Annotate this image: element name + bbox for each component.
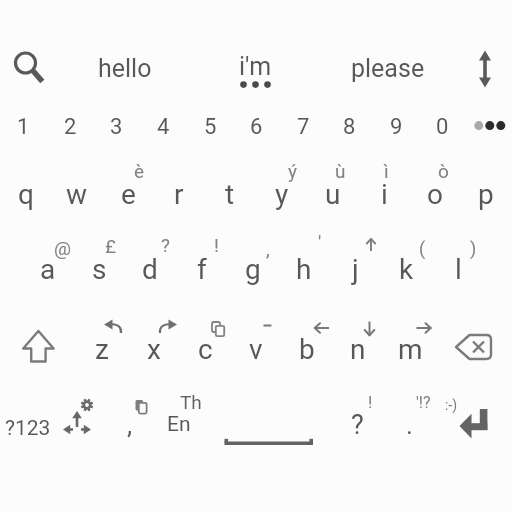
button[interactable]: r [139, 170, 219, 218]
staticText: '!? [416, 393, 431, 412]
button[interactable]: hello [85, 44, 165, 92]
staticText: ò [438, 160, 449, 182]
staticText: o [427, 178, 443, 211]
staticText: 2 [64, 114, 77, 140]
button[interactable]: i [344, 170, 424, 218]
button[interactable]: v [216, 325, 296, 373]
staticText: ? [351, 409, 364, 441]
button[interactable]: p [446, 170, 512, 218]
staticText: c [198, 333, 213, 366]
staticText: d [142, 253, 158, 286]
button[interactable]: 2 [30, 103, 110, 151]
button[interactable]: k [366, 245, 446, 293]
staticText: 7 [297, 114, 310, 140]
staticText: 4 [157, 114, 170, 140]
button[interactable]: y [242, 170, 322, 218]
button[interactable]: ?123 [0, 404, 68, 452]
button[interactable]: z [62, 325, 142, 373]
button[interactable]: d [110, 245, 190, 293]
staticText: n [350, 333, 366, 366]
button[interactable]: q [0, 170, 66, 218]
button[interactable] [156, 392, 204, 444]
staticText: x [147, 333, 161, 366]
button[interactable]: t [190, 170, 270, 218]
staticText: k [399, 253, 414, 286]
staticText: ?123 [5, 416, 51, 441]
button[interactable]: n [318, 325, 398, 373]
button[interactable]: 9 [356, 103, 436, 151]
button[interactable]: i'm [215, 42, 295, 90]
button[interactable]: . [369, 401, 449, 449]
button[interactable]: a [8, 245, 88, 293]
button[interactable]: 7 [263, 103, 343, 151]
button[interactable]: h [264, 245, 344, 293]
button[interactable]: 6 [216, 103, 296, 151]
button[interactable] [8, 44, 50, 88]
staticText: g [245, 253, 261, 286]
button[interactable]: g [213, 245, 293, 293]
staticText: ! [368, 392, 373, 412]
button[interactable] [466, 42, 506, 94]
button[interactable]: j [315, 245, 395, 293]
staticText: , [127, 410, 133, 440]
staticText: Th [180, 391, 202, 413]
button[interactable]: 4 [123, 103, 203, 151]
staticText: :-) [445, 397, 458, 413]
button[interactable]: please [348, 44, 428, 92]
button[interactable] [452, 402, 498, 446]
staticText: 6 [250, 114, 263, 140]
button[interactable]: 0 [402, 103, 482, 151]
staticText: z [95, 333, 109, 366]
button[interactable]: o [395, 170, 475, 218]
button[interactable]: x [114, 325, 194, 373]
staticText: ) [470, 238, 477, 259]
staticText: . [406, 410, 413, 440]
staticText: v [249, 333, 263, 366]
button[interactable]: b [267, 325, 347, 373]
staticText: 0 [436, 114, 449, 140]
button[interactable]: 1 [0, 103, 63, 151]
staticText: a [40, 253, 56, 286]
button[interactable] [56, 393, 102, 441]
staticText: u [325, 178, 341, 211]
button[interactable]: s [59, 245, 139, 293]
staticText: i [381, 178, 388, 211]
staticText: l [455, 253, 462, 286]
staticText: @ [54, 237, 72, 259]
button[interactable]: u [293, 170, 373, 218]
button[interactable]: e [88, 170, 168, 218]
staticText: q [18, 178, 34, 211]
button[interactable]: f [162, 245, 242, 293]
staticText: ? [161, 234, 170, 256]
staticText: ì [384, 160, 389, 182]
staticText: 5 [204, 114, 217, 140]
button[interactable]: ? [317, 401, 397, 449]
button[interactable] [210, 426, 326, 456]
staticText: , [266, 238, 270, 260]
button[interactable]: c [165, 325, 245, 373]
staticText: hello [98, 54, 152, 83]
staticText: y [275, 178, 289, 211]
button[interactable] [14, 323, 62, 369]
staticText: 8 [343, 114, 356, 140]
button[interactable]: 3 [76, 103, 156, 151]
staticText: m [398, 333, 423, 366]
staticText: 3 [110, 114, 123, 140]
staticText: f [197, 253, 207, 286]
staticText: i'm [239, 52, 272, 81]
staticText: please [351, 54, 425, 83]
staticText: ù [335, 160, 346, 182]
staticText: En [167, 412, 191, 437]
button[interactable]: l [418, 245, 498, 293]
button[interactable]: , [90, 401, 170, 449]
staticText: w [66, 178, 88, 211]
button[interactable]: m [370, 325, 450, 373]
button[interactable] [448, 327, 500, 367]
staticText: ! [214, 234, 219, 256]
button[interactable]: 8 [309, 103, 389, 151]
button[interactable] [468, 111, 512, 141]
button[interactable]: 5 [170, 103, 250, 151]
button[interactable]: w [37, 170, 117, 218]
staticText: r [174, 178, 184, 211]
staticText: t [225, 178, 235, 211]
